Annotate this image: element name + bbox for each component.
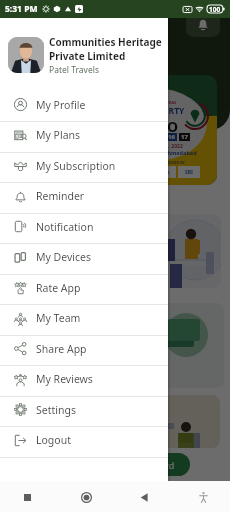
staticText: Visiting Card: [10, 365, 83, 381]
button[interactable]: Rate App: [0, 275, 168, 305]
staticText: 16: [168, 133, 175, 141]
button[interactable]: Create Visiting Card: [75, 453, 190, 476]
button[interactable]: Home: [73, 484, 99, 510]
button[interactable]: Share App: [0, 336, 168, 366]
staticText: My Devices: [36, 250, 92, 264]
button[interactable]: Accessibility: [190, 484, 216, 510]
button[interactable]: [10, 214, 221, 288]
staticText: GUJARAT SAURAS: [141, 100, 177, 105]
staticText: My Reviews: [36, 372, 93, 386]
button[interactable]: My Team: [0, 305, 168, 336]
button[interactable]: My Subscription: [0, 153, 168, 183]
staticText: My Subscription: [36, 159, 116, 173]
button[interactable]: Notification: [0, 214, 168, 244]
button[interactable]: Back: [131, 484, 157, 510]
staticText: CO-SPONSORED BY: [152, 160, 185, 165]
staticText: APRIL, 2022: [154, 143, 183, 150]
staticText: Logout: [36, 433, 71, 447]
button[interactable]: [8, 395, 220, 448]
staticText: My Profile: [36, 98, 86, 112]
button[interactable]: Reminder: [0, 183, 168, 214]
button[interactable]: Visiting Card: [8, 303, 224, 388]
button[interactable]: Communities Heritage: [8, 18, 168, 92]
button[interactable]: My Reviews: [0, 366, 168, 397]
staticText: EXPO: [141, 117, 178, 136]
button[interactable]: GUJARAT SAURAS: [10, 75, 217, 185]
button[interactable]: My Plans: [0, 122, 168, 153]
staticText: Communities Heritage: [49, 35, 162, 49]
staticText: Patel Travels: [49, 64, 99, 76]
staticText: My Team: [36, 311, 81, 325]
staticText: Private Limited: [49, 49, 126, 63]
button[interactable]: My Profile: [0, 92, 168, 122]
staticText: Reminder: [36, 189, 85, 203]
staticText: Rate App: [36, 281, 81, 295]
staticText: My Plans: [36, 128, 81, 142]
staticText: 17: [181, 133, 188, 141]
button[interactable]: My Devices: [0, 244, 168, 275]
staticText: Notification: [36, 220, 94, 234]
button[interactable]: Recents: [14, 484, 40, 510]
staticText: ICICI Bank: [142, 169, 170, 176]
staticText: Dashboard: [38, 15, 109, 33]
staticText: Create Visiting Card: [91, 459, 175, 471]
staticText: Share App: [36, 342, 87, 356]
button[interactable]: Notifications: [186, 12, 220, 37]
button[interactable]: Open menu: [10, 14, 30, 34]
button[interactable]: Logout: [0, 427, 168, 458]
staticText: 100: [209, 5, 221, 14]
button[interactable]: Settings: [0, 397, 168, 427]
staticText: 5:31 PM: [5, 3, 38, 15]
staticText: SBI: [185, 169, 194, 176]
staticText: PROPERTY: [141, 105, 185, 117]
staticText: Venue : Ahmedabad: [142, 149, 197, 156]
staticText: Settings: [36, 403, 76, 417]
